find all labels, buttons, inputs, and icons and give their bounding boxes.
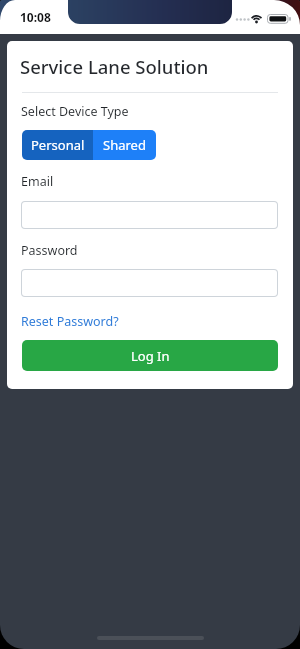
staticText: Personal: [31, 136, 85, 154]
button[interactable]: Reset Password?: [21, 313, 119, 330]
staticText: 10:08: [20, 9, 51, 25]
staticText: Select Device Type: [21, 103, 129, 120]
staticText: Shared: [103, 136, 146, 154]
staticText: Email: [21, 173, 54, 190]
button[interactable]: Log In: [22, 340, 278, 371]
button[interactable]: Shared: [93, 130, 156, 160]
staticText: Log In: [131, 347, 170, 365]
staticText: Service Lane Solution: [20, 54, 209, 79]
staticText: Password: [21, 242, 78, 259]
button[interactable]: Personal: [22, 130, 93, 160]
